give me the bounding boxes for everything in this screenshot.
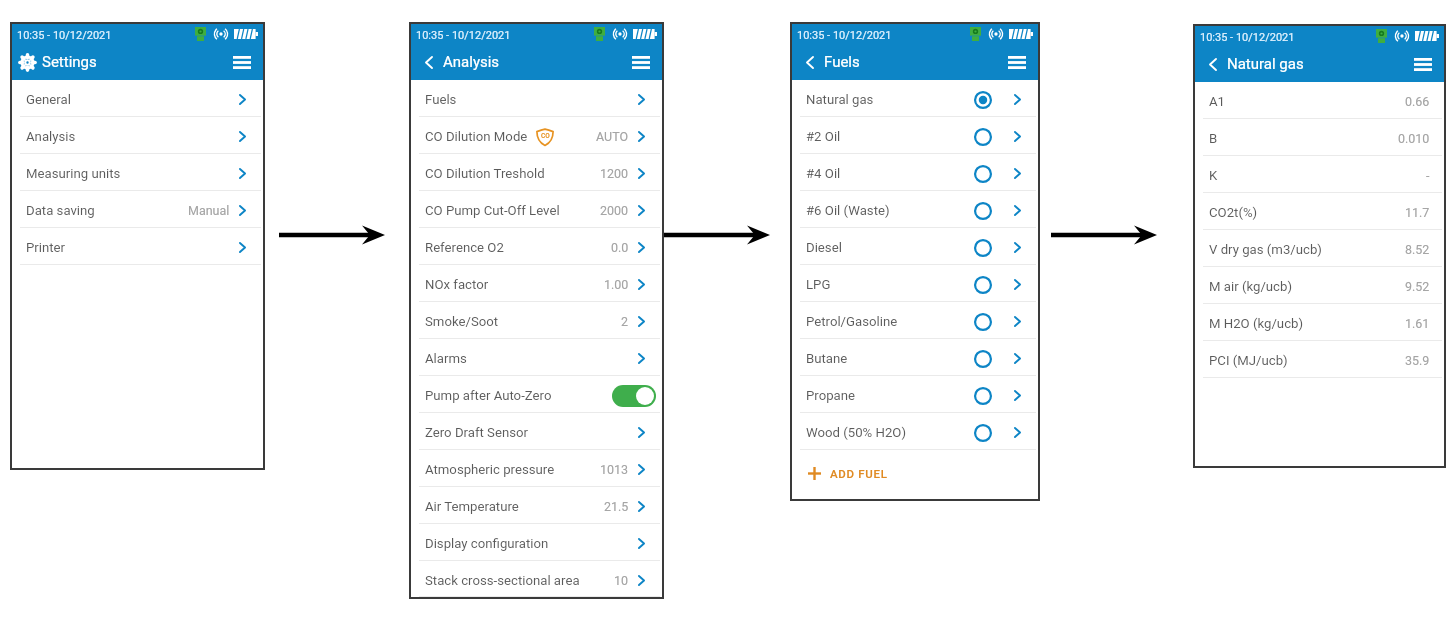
button[interactable]: Display configuration <box>411 524 662 561</box>
button[interactable]: Wood (50% H2O) <box>792 413 1038 450</box>
staticText: Smoke/Soot <box>425 314 499 329</box>
staticText: 10:35 - 10/12/2021 <box>416 29 511 42</box>
staticText: Alarms <box>425 351 467 366</box>
button[interactable]: Menu <box>630 51 652 73</box>
staticText: K <box>1209 168 1218 183</box>
button[interactable]: LPG <box>792 265 1038 302</box>
button[interactable]: V dry gas (m3/ucb) <box>1195 230 1444 267</box>
button[interactable] <box>612 385 656 407</box>
staticText: M air (kg/ucb) <box>1209 279 1292 294</box>
button[interactable]: Butane <box>792 339 1038 376</box>
staticText: M H2O (kg/ucb) <box>1209 316 1304 331</box>
button[interactable]: Menu <box>1006 51 1028 73</box>
button[interactable]: Propane <box>792 376 1038 413</box>
button[interactable]: Natural gas <box>792 80 1038 117</box>
button[interactable]: Fuels <box>411 80 662 117</box>
button[interactable]: Stack cross-sectional area <box>411 561 662 597</box>
button[interactable]: Alarms <box>411 339 662 376</box>
button[interactable]: Menu <box>231 51 253 73</box>
staticText: 0.0 <box>611 240 629 255</box>
staticText: Natural gas <box>806 92 874 107</box>
button[interactable]: Data saving <box>12 191 263 228</box>
staticText: Air Temperature <box>425 499 519 514</box>
staticText: LPG <box>806 277 831 292</box>
staticText: #6 Oil (Waste) <box>806 203 890 218</box>
staticText: 0.010 <box>1398 131 1430 146</box>
staticText: Petrol/Gasoline <box>806 314 898 329</box>
staticText: Butane <box>806 351 848 366</box>
button[interactable]: A1 <box>1195 82 1444 119</box>
button[interactable]: NOx factor <box>411 265 662 302</box>
staticText: Fuels <box>824 53 860 71</box>
button[interactable]: Back <box>1200 51 1225 77</box>
button[interactable]: Pump after Auto-Zero <box>411 376 662 413</box>
staticText: Diesel <box>806 240 842 255</box>
staticText: Display configuration <box>425 536 549 551</box>
staticText: Manual <box>188 203 230 218</box>
staticText: 8.52 <box>1405 242 1430 257</box>
staticText: Natural gas <box>1227 55 1304 73</box>
button[interactable]: CO Pump Cut-Off Level <box>411 191 662 228</box>
button[interactable]: CO Dilution Treshold <box>411 154 662 191</box>
staticText: AUTO <box>596 129 629 144</box>
button[interactable]: Petrol/Gasoline <box>792 302 1038 339</box>
button[interactable]: K <box>1195 156 1444 193</box>
staticText: 2000 <box>600 203 629 218</box>
staticText: 35.9 <box>1405 353 1430 368</box>
staticText: 10 <box>614 573 629 588</box>
staticText: 10:35 - 10/12/2021 <box>17 29 112 42</box>
button[interactable]: Analysis <box>12 117 263 154</box>
button[interactable]: Printer <box>12 228 263 265</box>
button[interactable]: PCI (MJ/ucb) <box>1195 341 1444 378</box>
staticText: 1013 <box>600 462 629 477</box>
button[interactable]: Back <box>416 49 441 75</box>
staticText: 9.52 <box>1405 279 1430 294</box>
staticText: 1200 <box>600 166 629 181</box>
staticText: A1 <box>1209 94 1226 109</box>
staticText: NOx factor <box>425 277 489 292</box>
button[interactable]: #2 Oil <box>792 117 1038 154</box>
button[interactable]: #4 Oil <box>792 154 1038 191</box>
staticText: Fuels <box>425 92 457 107</box>
staticText: CO Dilution Treshold <box>425 166 545 181</box>
staticText: Measuring units <box>26 166 121 181</box>
staticText: 21.5 <box>604 499 629 514</box>
button[interactable]: Reference O2 <box>411 228 662 265</box>
staticText: Propane <box>806 388 856 403</box>
staticText: #4 Oil <box>806 166 841 181</box>
staticText: Wood (50% H2O) <box>806 425 907 440</box>
button[interactable]: CO2t(%) <box>1195 193 1444 230</box>
staticText: Analysis <box>26 129 76 144</box>
button[interactable]: Atmospheric pressure <box>411 450 662 487</box>
button[interactable]: M air (kg/ucb) <box>1195 267 1444 304</box>
button[interactable]: Back <box>797 49 822 75</box>
button[interactable]: Measuring units <box>12 154 263 191</box>
staticText: 10:35 - 10/12/2021 <box>797 29 892 42</box>
staticText: Zero Draft Sensor <box>425 425 529 440</box>
staticText: 11.7 <box>1405 205 1430 220</box>
button[interactable]: Menu <box>1412 53 1434 75</box>
staticText: Printer <box>26 240 66 255</box>
button[interactable]: CO Dilution Mode <box>411 117 662 154</box>
staticText: Data saving <box>26 203 95 218</box>
button[interactable]: #6 Oil (Waste) <box>792 191 1038 228</box>
staticText: Stack cross-sectional area <box>425 573 580 588</box>
button[interactable]: Zero Draft Sensor <box>411 413 662 450</box>
staticText: Atmospheric pressure <box>425 462 555 477</box>
button[interactable]: Smoke/Soot <box>411 302 662 339</box>
staticText: CO <box>541 132 550 140</box>
staticText: V dry gas (m3/ucb) <box>1209 242 1322 257</box>
staticText: #2 Oil <box>806 129 841 144</box>
staticText: Pump after Auto-Zero <box>425 388 552 403</box>
button[interactable]: B <box>1195 119 1444 156</box>
button[interactable]: Diesel <box>792 228 1038 265</box>
staticText: CO2t(%) <box>1209 205 1258 220</box>
staticText: B <box>1209 131 1218 146</box>
button[interactable]: General <box>12 80 263 117</box>
button[interactable]: M H2O (kg/ucb) <box>1195 304 1444 341</box>
button[interactable]: Air Temperature <box>411 487 662 524</box>
button[interactable]: ADD FUEL <box>792 450 1038 490</box>
staticText: Settings <box>42 53 97 71</box>
staticText: ADD FUEL <box>830 467 888 480</box>
staticText: General <box>26 92 71 107</box>
